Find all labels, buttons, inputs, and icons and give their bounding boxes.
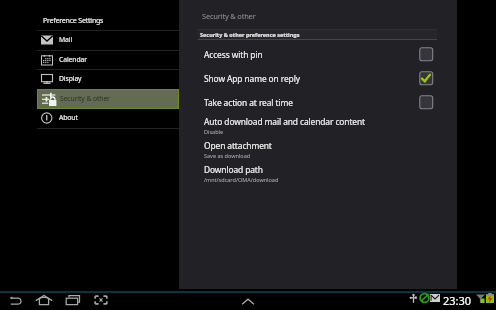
staticText: About (59, 113, 78, 122)
button[interactable]: Back (5, 289, 27, 310)
button[interactable]: Open attachment (179, 138, 457, 162)
button[interactable]: Show notifications (239, 294, 257, 307)
staticText: Access with pin (204, 49, 263, 60)
button[interactable]: Access with pin (179, 42, 457, 66)
button[interactable]: Screenshot (90, 289, 112, 310)
staticText: 23:30 (443, 293, 472, 308)
staticText: Open attachment (204, 140, 272, 151)
staticText: Mail (59, 35, 73, 44)
button[interactable]: Recent apps (62, 289, 84, 310)
staticText: /mnt/sdcard/OMA/download (204, 176, 279, 183)
button[interactable]: About (37, 108, 179, 128)
staticText: Security & other preference settings (200, 31, 300, 38)
button[interactable]: Take action at real time (179, 90, 457, 114)
button[interactable]: Download path (179, 162, 457, 186)
staticText: Auto download mail and calendar content (204, 116, 365, 127)
button[interactable]: Mail (37, 30, 179, 50)
staticText: Disable (204, 128, 224, 135)
staticText: Show App name on reply (204, 73, 300, 84)
staticText: Take action at real time (204, 97, 293, 108)
staticText: Security & other (202, 11, 256, 21)
staticText: Display (59, 74, 82, 83)
staticText: Security & other (60, 94, 110, 103)
button[interactable]: Home (33, 289, 55, 310)
staticText: Calendar (59, 55, 87, 64)
button[interactable]: Display (37, 69, 179, 89)
staticText: Download path (204, 164, 263, 175)
button[interactable]: Security & other (38, 90, 178, 108)
button[interactable]: Show App name on reply (179, 66, 457, 90)
button[interactable]: Calendar (37, 50, 179, 70)
button[interactable]: Auto download mail and calendar content (179, 114, 457, 138)
staticText: Save as download (204, 152, 251, 159)
staticText: Preference Settings (43, 16, 104, 26)
